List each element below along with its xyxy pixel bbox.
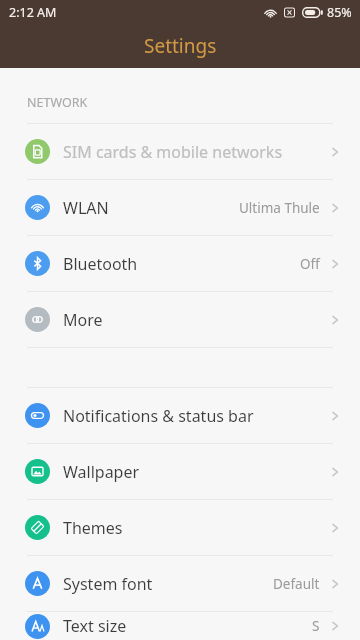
staticText: Themes — [63, 517, 331, 539]
button[interactable]: WLAN — [0, 180, 360, 235]
staticText: SIM cards & mobile networks — [63, 141, 331, 163]
staticText: Wallpaper — [63, 461, 331, 483]
staticText: NETWORK — [27, 94, 88, 111]
button[interactable]: Bluetooth — [0, 236, 360, 291]
button[interactable]: Text size — [0, 612, 360, 640]
staticText: Off — [300, 255, 320, 273]
button[interactable]: Themes — [0, 500, 360, 555]
button[interactable]: System font — [0, 556, 360, 611]
button[interactable]: SIM cards & mobile networks — [0, 124, 360, 179]
staticText: Default — [273, 575, 320, 593]
staticText: Bluetooth — [63, 253, 300, 275]
staticText: More — [63, 309, 331, 331]
staticText: 85% — [327, 4, 352, 21]
staticText: Notifications & status bar — [63, 405, 331, 427]
staticText: Text size — [63, 615, 312, 637]
staticText: System font — [63, 573, 273, 595]
staticText: Ultima Thule — [239, 199, 320, 217]
staticText: Settings — [144, 33, 217, 59]
staticText: WLAN — [63, 197, 239, 219]
button[interactable]: Wallpaper — [0, 444, 360, 499]
staticText: 2:12 AM — [9, 4, 57, 21]
button[interactable]: Notifications & status bar — [0, 388, 360, 443]
staticText: S — [312, 617, 320, 635]
button[interactable]: More — [0, 292, 360, 347]
